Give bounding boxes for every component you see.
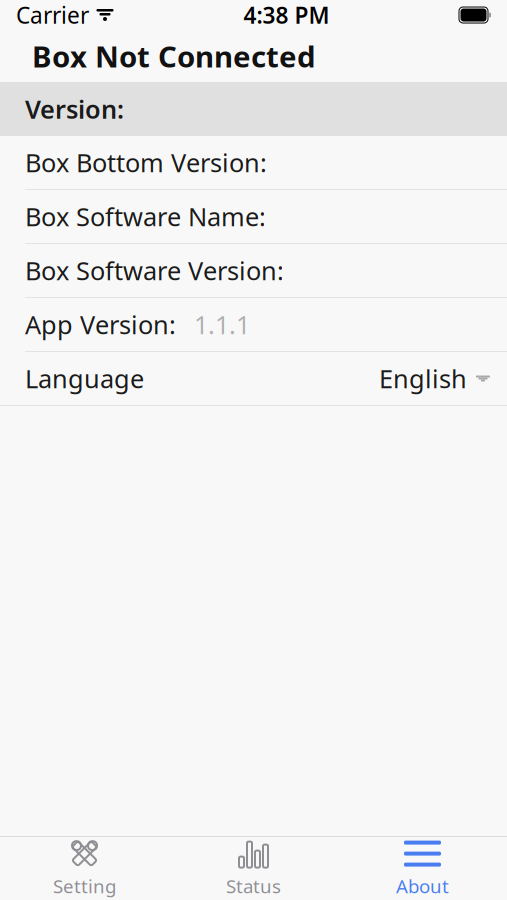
staticText: 4:38 PM bbox=[243, 0, 329, 30]
button[interactable]: Language bbox=[0, 352, 507, 406]
staticText: Setting bbox=[53, 874, 116, 898]
staticText: English bbox=[379, 362, 467, 395]
button[interactable]: Box Software Version: bbox=[0, 244, 507, 298]
button[interactable]: Setting bbox=[0, 837, 169, 900]
staticText: Language bbox=[25, 362, 144, 395]
button[interactable]: Status bbox=[169, 837, 338, 900]
staticText: Box Software Name: bbox=[25, 200, 266, 233]
staticText: Version: bbox=[25, 92, 124, 126]
staticText: Box Software Version: bbox=[25, 254, 284, 287]
staticText: Status bbox=[226, 874, 281, 898]
staticText: Box Bottom Version: bbox=[25, 146, 267, 179]
staticText: App Version: bbox=[25, 308, 176, 341]
button[interactable]: Box Bottom Version: bbox=[0, 136, 507, 190]
button[interactable]: Box Software Name: bbox=[0, 190, 507, 244]
button[interactable]: About bbox=[338, 837, 507, 900]
staticText: Carrier bbox=[16, 0, 89, 30]
button[interactable]: App Version: bbox=[0, 298, 507, 352]
staticText: 1.1.1 bbox=[194, 308, 250, 341]
staticText: Box Not Connected bbox=[32, 36, 316, 75]
staticText: About bbox=[396, 874, 449, 898]
